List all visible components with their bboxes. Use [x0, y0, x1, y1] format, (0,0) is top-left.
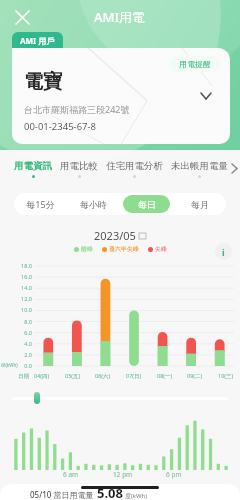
staticText: 14.0: [0, 284, 32, 291]
button[interactable]: 用電提醒: [170, 56, 220, 72]
button[interactable]: 用電提醒: [12, 48, 230, 144]
staticText: 每15分: [26, 198, 55, 210]
button[interactable]: 用電比較: [56, 160, 102, 178]
staticText: 用電資訊: [14, 160, 52, 172]
staticText: 日期: [18, 373, 29, 380]
staticText: 05/10 當日用電量: [30, 489, 94, 500]
button[interactable]: 未出帳用電量: [167, 160, 232, 178]
staticText: 5.08: [97, 484, 123, 500]
staticText: 06(六): [95, 372, 111, 380]
staticText: 12.0: [0, 295, 32, 302]
staticText: 6 pm: [166, 470, 182, 479]
staticText: AMI用電: [94, 8, 146, 26]
staticText: i: [222, 246, 225, 258]
staticText: 每小時: [80, 199, 107, 210]
button[interactable]: 住宅用電分析: [102, 160, 167, 178]
staticText: 07(日): [126, 372, 142, 380]
staticText: 2023/05: [94, 228, 136, 243]
staticText: 0.0: [0, 362, 32, 369]
staticText: 6 am: [63, 470, 79, 479]
staticText: 電寶: [24, 70, 62, 94]
staticText: 6.0: [0, 329, 32, 336]
staticText: 每日: [138, 199, 156, 210]
button[interactable]: 每月: [176, 195, 223, 213]
staticText: 度(kWh): [1, 362, 18, 368]
staticText: 8.0: [0, 318, 32, 325]
button[interactable]: Information: [215, 243, 232, 260]
staticText: 16.0: [0, 273, 32, 280]
staticText: 台北市羅斯福路三段242號: [24, 103, 130, 115]
staticText: 離峰: [81, 245, 93, 253]
button[interactable]: AMI 用戶: [12, 32, 63, 49]
staticText: AMI 用戶: [20, 35, 55, 46]
staticText: 05(五): [65, 372, 81, 380]
button[interactable]: 用電資訊: [10, 160, 56, 178]
staticText: 住宅用電分析: [106, 160, 163, 172]
staticText: 用電比較: [60, 160, 98, 172]
staticText: 尖峰: [155, 245, 167, 253]
staticText: 10(三): [218, 372, 234, 380]
button[interactable]: Expand: [196, 86, 216, 106]
button[interactable]: Time range slider: [34, 392, 40, 404]
staticText: 12 pm: [113, 470, 133, 479]
button[interactable]: 每小時: [70, 195, 117, 213]
staticText: 用電提醒: [179, 59, 211, 69]
button[interactable]: 每日: [123, 195, 170, 213]
staticText: 10.0: [0, 306, 32, 313]
button[interactable]: 每15分: [17, 195, 64, 213]
button[interactable]: More tabs: [228, 160, 240, 176]
button[interactable]: Close: [10, 5, 34, 29]
staticText: 18.0: [0, 262, 32, 269]
staticText: 2.0: [0, 351, 32, 358]
staticText: 09(二): [187, 372, 203, 380]
staticText: 未出帳用電量: [171, 160, 228, 172]
staticText: 00-01-2345-67-8: [24, 120, 97, 133]
staticText: 04(四): [34, 372, 50, 380]
staticText: 度(kWh): [125, 492, 148, 500]
button[interactable]: Pick date: [139, 232, 146, 239]
staticText: 每月: [191, 199, 209, 210]
staticText: 週六半尖峰: [109, 245, 139, 253]
staticText: 4.0: [0, 340, 32, 347]
staticText: 08(一): [157, 372, 173, 380]
